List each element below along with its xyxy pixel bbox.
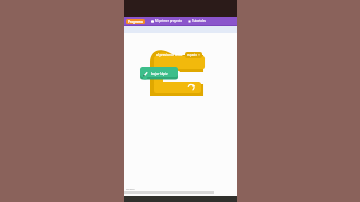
button[interactable]: Pen down — [140, 67, 178, 79]
staticText: bajar lápiz — [151, 71, 168, 76]
button[interactable]: Programa — [126, 19, 145, 24]
other: Pen down — [142, 70, 149, 77]
staticText: al presionar tecla — [156, 53, 183, 57]
button[interactable]: espacio — [185, 52, 202, 58]
staticText: Mi primer proyecto — [155, 19, 182, 23]
button[interactable]: al presionar tecla — [156, 52, 202, 58]
staticText: Programa — [128, 20, 143, 24]
staticText: Scratch — [126, 187, 135, 190]
staticText: Tutoriales — [192, 19, 206, 23]
staticText: espacio — [187, 53, 197, 57]
button[interactable]: Tutoriales — [187, 19, 207, 23]
button[interactable]: Mi primer proyecto — [150, 19, 183, 23]
